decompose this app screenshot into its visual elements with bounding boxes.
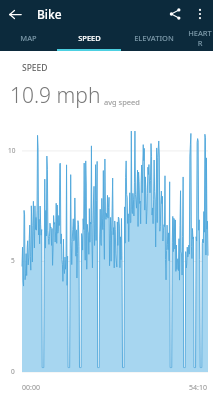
staticText: HEART R xyxy=(187,28,213,48)
staticText: 54:10 xyxy=(189,383,207,393)
staticText: avg speed xyxy=(104,97,140,107)
staticText: 0 xyxy=(11,367,15,376)
button[interactable]: SPEED xyxy=(57,27,121,51)
staticText: Bike xyxy=(37,6,62,22)
staticText: 5 xyxy=(11,256,15,265)
staticText: MAP xyxy=(20,33,37,43)
staticText: 00:00 xyxy=(22,383,40,393)
staticText: SPEED xyxy=(78,33,101,43)
staticText: 10 xyxy=(8,146,16,155)
button[interactable]: Back xyxy=(3,2,27,26)
button[interactable]: MAP xyxy=(0,27,57,51)
staticText: SPEED xyxy=(22,62,48,74)
button[interactable]: ELEVATION xyxy=(121,27,187,51)
staticText: 10.9 mph xyxy=(10,81,101,110)
button[interactable]: More options xyxy=(188,2,212,26)
button[interactable]: HEART R xyxy=(187,27,213,51)
staticText: ELEVATION xyxy=(134,33,174,43)
button[interactable]: Share xyxy=(162,1,188,27)
